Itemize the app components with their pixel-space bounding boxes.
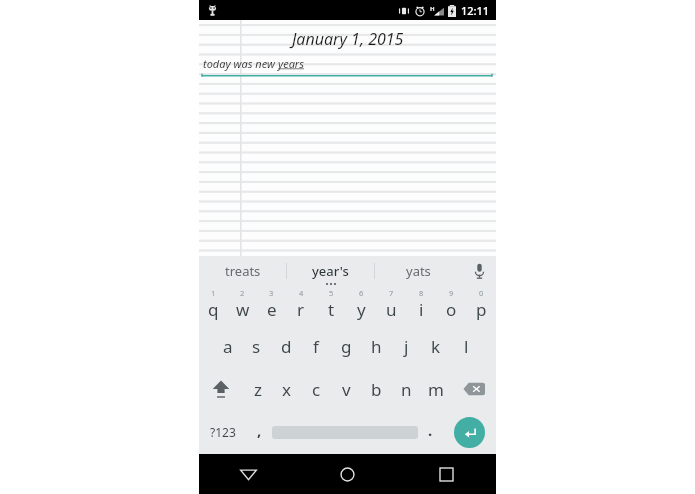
button[interactable]: , xyxy=(247,410,272,454)
button[interactable]: Home xyxy=(298,454,397,494)
staticText: g xyxy=(341,335,352,358)
button[interactable]: s xyxy=(242,324,271,368)
staticText: h xyxy=(371,335,382,358)
staticText: c xyxy=(312,378,321,401)
staticText: q xyxy=(208,298,219,321)
staticText: year's xyxy=(312,262,349,280)
staticText: v xyxy=(342,378,351,401)
button[interactable]: g xyxy=(331,324,361,368)
staticText: b xyxy=(371,378,382,401)
button[interactable]: Back xyxy=(199,454,298,494)
staticText: , xyxy=(257,420,262,440)
button[interactable]: h xyxy=(361,324,391,368)
button[interactable]: a xyxy=(213,324,242,368)
button[interactable]: 9 xyxy=(436,286,466,324)
staticText: k xyxy=(431,335,441,358)
button[interactable]: b xyxy=(361,368,391,410)
button[interactable]: 4 xyxy=(286,286,316,324)
staticText: . xyxy=(428,420,433,440)
staticText: z xyxy=(254,378,262,401)
staticText: 3 xyxy=(269,288,274,298)
staticText: January 1, 2015 xyxy=(292,28,404,50)
button[interactable]: . xyxy=(418,410,443,454)
button[interactable]: 1 xyxy=(199,286,228,324)
staticText: 0 xyxy=(479,288,484,298)
button[interactable]: 5 xyxy=(316,286,346,324)
staticText: o xyxy=(446,298,457,321)
staticText: d xyxy=(281,335,292,358)
staticText: years xyxy=(278,56,305,71)
button[interactable]: Enter xyxy=(454,417,485,448)
staticText: 1 xyxy=(211,288,216,298)
button[interactable]: ?123 xyxy=(199,410,247,454)
staticText: j xyxy=(404,335,409,358)
staticText: r xyxy=(297,298,305,321)
button[interactable]: f xyxy=(301,324,331,368)
button[interactable]: k xyxy=(421,324,451,368)
staticText: treats xyxy=(225,262,261,280)
staticText: l xyxy=(464,335,469,358)
button[interactable]: 7 xyxy=(376,286,406,324)
staticText: p xyxy=(476,298,487,321)
staticText: 4 xyxy=(299,288,304,298)
staticText: 5 xyxy=(329,288,334,298)
button[interactable]: Recent apps xyxy=(397,454,496,494)
staticText: yats xyxy=(406,262,431,280)
staticText: today was new xyxy=(203,56,278,71)
button[interactable]: treats xyxy=(199,256,286,286)
button[interactable]: Voice input xyxy=(462,256,496,286)
button[interactable]: d xyxy=(271,324,301,368)
staticText: ?123 xyxy=(210,424,236,440)
button[interactable]: j xyxy=(391,324,421,368)
staticText: e xyxy=(267,298,277,321)
button[interactable] xyxy=(272,410,418,454)
staticText: x xyxy=(282,378,291,401)
button[interactable]: z xyxy=(243,368,272,410)
staticText: a xyxy=(223,335,233,358)
button[interactable]: 0 xyxy=(466,286,496,324)
button[interactable]: 6 xyxy=(346,286,376,324)
staticText: s xyxy=(252,335,261,358)
staticText: m xyxy=(428,378,444,401)
staticText: 6 xyxy=(359,288,364,298)
button[interactable]: c xyxy=(301,368,331,410)
button[interactable]: yats xyxy=(375,256,462,286)
button[interactable]: n xyxy=(391,368,421,410)
staticText: t xyxy=(328,298,335,321)
button[interactable]: l xyxy=(451,324,481,368)
button[interactable]: Shift xyxy=(199,368,243,410)
button[interactable]: v xyxy=(331,368,361,410)
staticText: f xyxy=(313,335,319,358)
staticText: w xyxy=(236,298,250,321)
staticText: 9 xyxy=(449,288,454,298)
button[interactable]: year's xyxy=(287,256,374,286)
button[interactable]: 2 xyxy=(228,286,257,324)
staticText: i xyxy=(419,298,424,321)
button[interactable]: x xyxy=(272,368,301,410)
button[interactable]: 8 xyxy=(406,286,436,324)
staticText: H xyxy=(430,5,435,13)
button[interactable]: 3 xyxy=(257,286,286,324)
staticText: y xyxy=(357,298,366,321)
button[interactable]: Backspace xyxy=(451,368,496,410)
staticText: 2 xyxy=(240,288,245,298)
staticText: u xyxy=(386,298,397,321)
staticText: 7 xyxy=(389,288,394,298)
staticText: 12:11 xyxy=(461,3,490,18)
staticText: n xyxy=(401,378,412,401)
button[interactable]: m xyxy=(421,368,451,410)
staticText: 8 xyxy=(419,288,424,298)
